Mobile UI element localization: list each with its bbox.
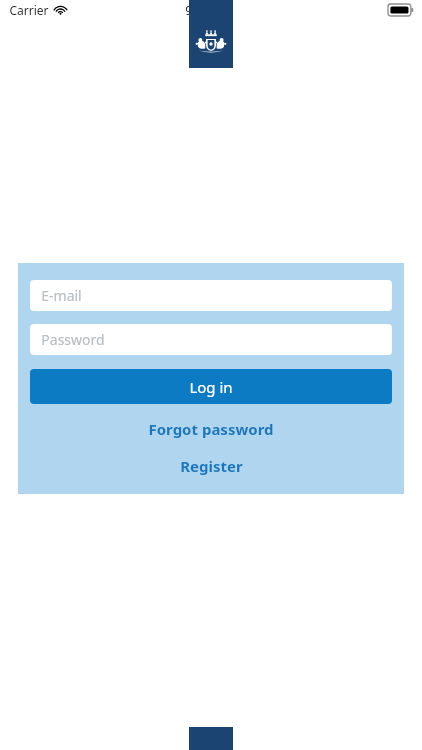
- staticText: Register: [180, 456, 243, 476]
- staticText: Log in: [189, 377, 233, 397]
- button[interactable]: Password: [30, 324, 392, 355]
- button[interactable]: Register: [30, 453, 392, 479]
- staticText: E-mail: [41, 286, 82, 305]
- button[interactable]: E-mail: [30, 280, 392, 311]
- button[interactable]: Forgot password: [30, 416, 392, 442]
- staticText: 9:55 AM: [185, 2, 231, 18]
- button[interactable]: Log in: [30, 369, 392, 404]
- staticText: Password: [41, 330, 105, 349]
- staticText: Forgot password: [148, 419, 274, 439]
- staticText: Carrier: [9, 2, 49, 18]
